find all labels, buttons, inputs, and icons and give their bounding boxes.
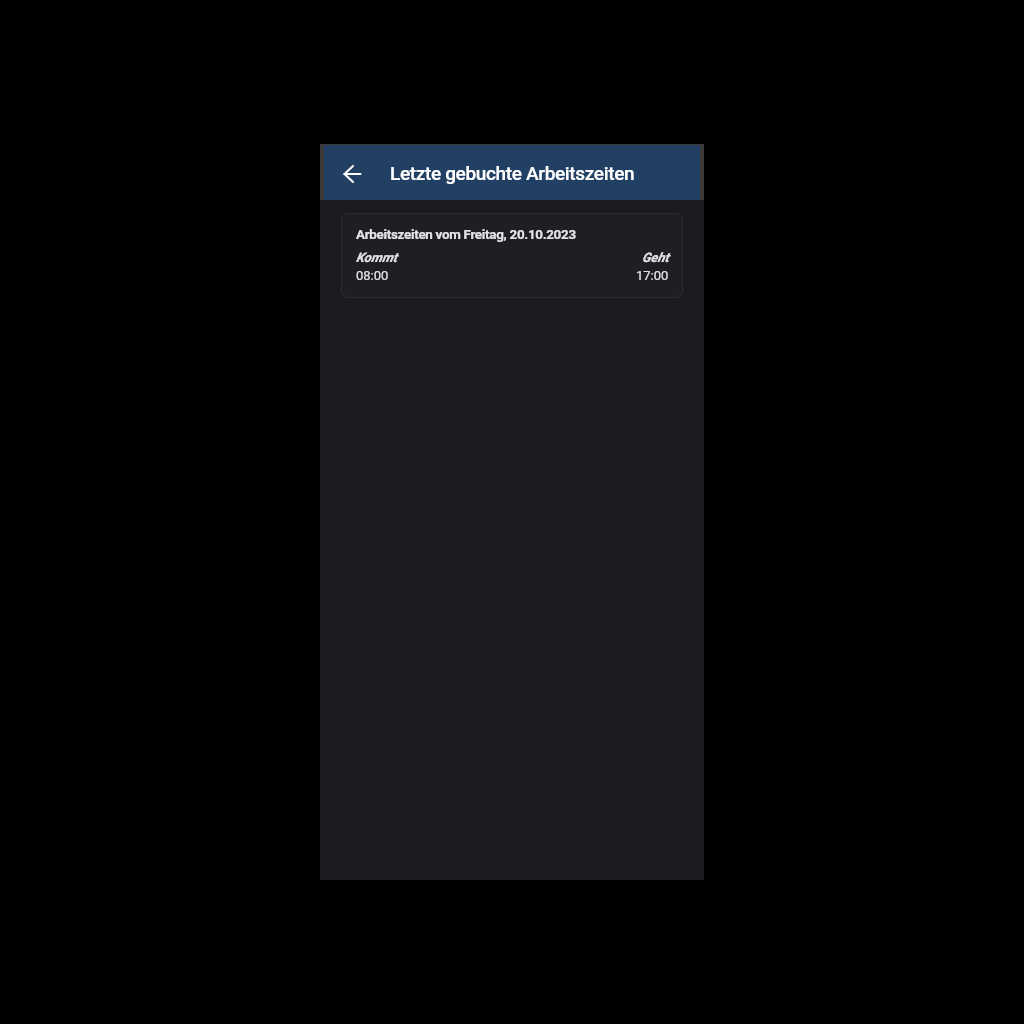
staticText: Kommt	[356, 250, 398, 265]
staticText: 17:00	[636, 268, 669, 283]
staticText: Letzte gebuchte Arbeitszeiten	[390, 162, 635, 184]
staticText: Geht	[642, 250, 669, 265]
staticText: 08:00	[356, 268, 389, 283]
button[interactable]: Back	[334, 155, 370, 191]
staticText: Arbeitszeiten vom Freitag, 20.10.2023	[356, 227, 576, 243]
button[interactable]: Arbeitszeiten vom Freitag, 20.10.2023	[341, 213, 683, 298]
